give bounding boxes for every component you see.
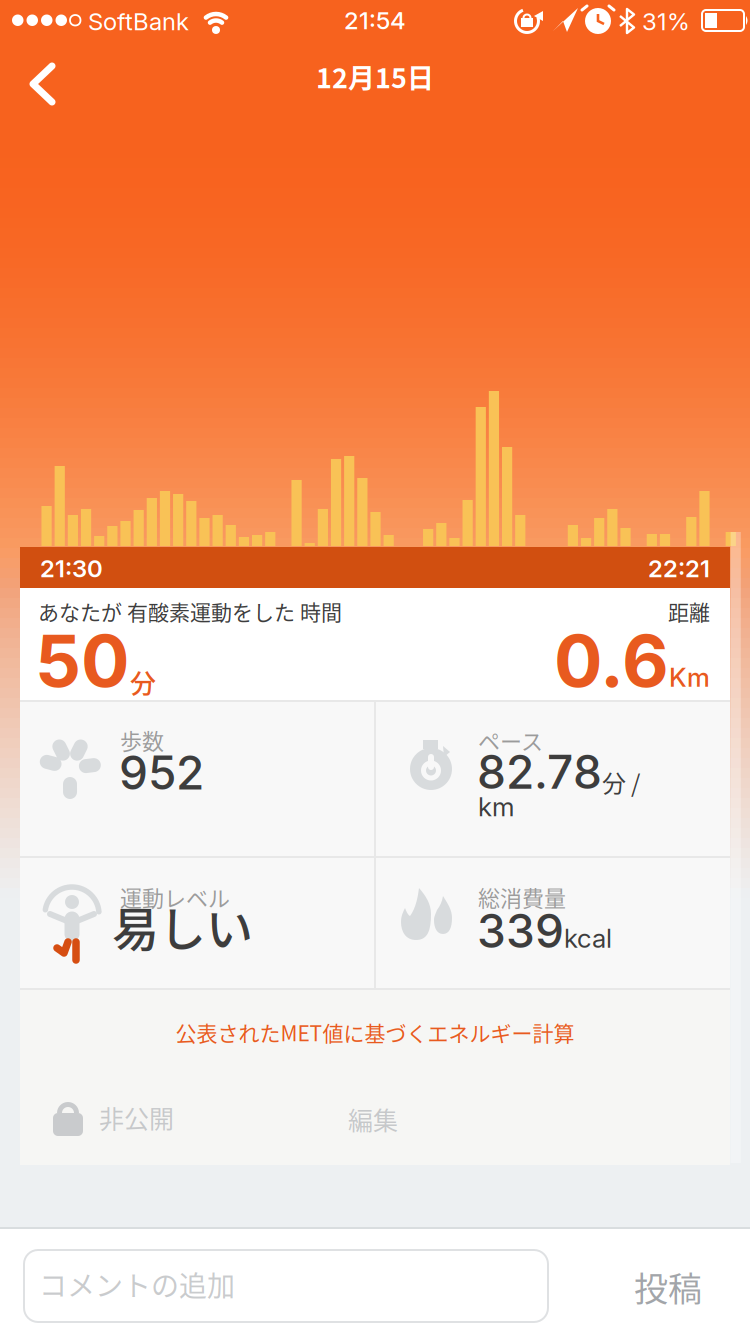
- staticText: 編集: [348, 1101, 398, 1137]
- staticText: 公表されたMET値に基づくエネルギー計算: [175, 1017, 574, 1047]
- staticText: 歩数: [120, 724, 164, 756]
- button[interactable]: 公表されたMET値に基づくエネルギー計算: [20, 1017, 730, 1047]
- button[interactable]: 投稿: [634, 1262, 702, 1311]
- staticText: 21:54: [344, 6, 406, 35]
- staticText: 易しい: [112, 892, 253, 960]
- staticText: 31%: [642, 7, 690, 36]
- staticText: 距離: [668, 596, 710, 626]
- staticText: 21:30: [40, 554, 103, 583]
- staticText: ペース: [478, 724, 543, 756]
- staticText: 投稿: [634, 1262, 702, 1311]
- staticText: コメントの追加: [39, 1264, 235, 1304]
- staticText: 非公開: [99, 1099, 174, 1136]
- staticText: 0.6Km: [554, 618, 710, 703]
- staticText: あなたが 有酸素運動をした 時間: [38, 596, 342, 626]
- button[interactable]: コメントの追加: [24, 1250, 548, 1322]
- button[interactable]: 非公開: [50, 1098, 174, 1137]
- staticText: 12月15日: [316, 57, 434, 96]
- staticText: 952: [119, 745, 204, 801]
- staticText: km: [478, 791, 514, 822]
- staticText: SoftBank: [88, 7, 189, 36]
- staticText: 総消費量: [478, 881, 566, 913]
- staticText: 339kcal: [477, 904, 612, 958]
- button[interactable]: 編集: [348, 1101, 398, 1137]
- button[interactable]: Back: [12, 58, 88, 110]
- staticText: 50分: [35, 618, 156, 703]
- staticText: 運動レベル: [120, 881, 230, 913]
- staticText: 82.78分 /: [477, 745, 640, 799]
- staticText: 22:21: [648, 554, 710, 583]
